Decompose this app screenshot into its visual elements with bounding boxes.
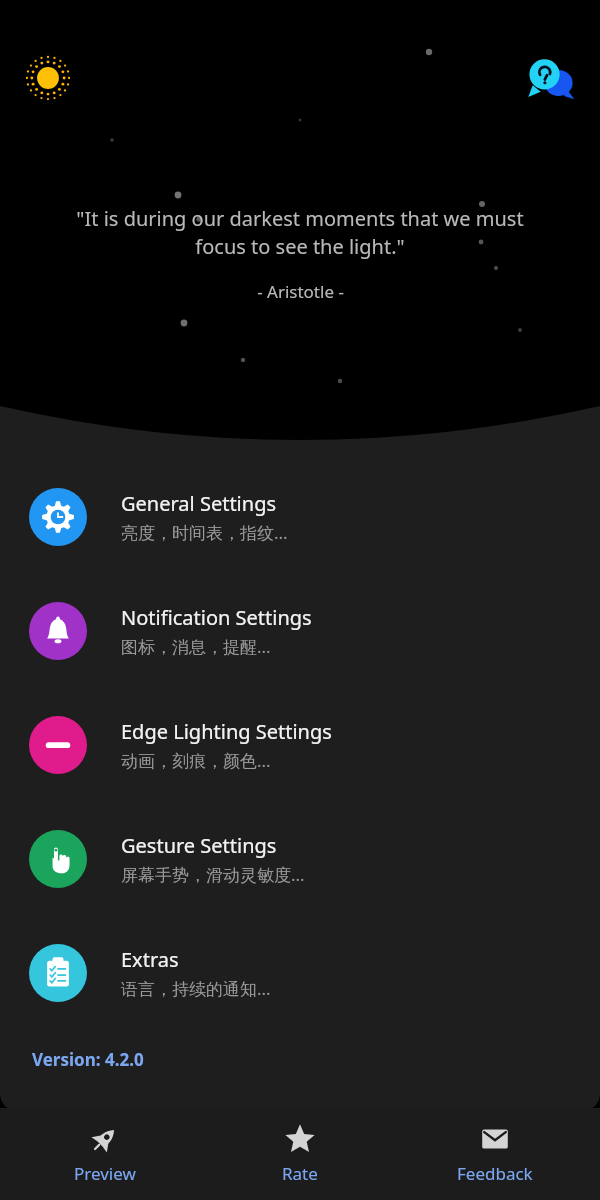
staticText: Notification Settings	[121, 604, 312, 631]
staticText: 动画，刻痕，颜色...	[121, 749, 271, 772]
staticText: Preview	[74, 1162, 136, 1185]
button[interactable]: Gesture Settings	[0, 802, 600, 916]
button[interactable]: Theme	[22, 52, 74, 104]
staticText: Extras	[121, 946, 179, 973]
staticText: General Settings	[121, 490, 277, 517]
button[interactable]: Rate	[210, 1108, 390, 1200]
staticText: Feedback	[457, 1162, 533, 1185]
button[interactable]: Preview	[15, 1108, 195, 1200]
staticText: 语言，持续的通知...	[121, 977, 271, 1000]
button[interactable]: General Settings	[0, 460, 600, 574]
button[interactable]: Edge Lighting Settings	[0, 688, 600, 802]
staticText: Gesture Settings	[121, 832, 277, 859]
button[interactable]: Version: 4.2.0	[32, 1048, 600, 1071]
staticText: 屏幕手势，滑动灵敏度...	[121, 863, 305, 886]
button[interactable]: Help	[524, 56, 578, 110]
staticText: "It is during our darkest moments that w…	[70, 205, 530, 260]
button[interactable]: Notification Settings	[0, 574, 600, 688]
button[interactable]: Feedback	[405, 1108, 585, 1200]
staticText: Rate	[282, 1162, 318, 1185]
staticText: - Aristotle -	[257, 280, 344, 303]
staticText: 图标，消息，提醒...	[121, 635, 271, 658]
staticText: Edge Lighting Settings	[121, 718, 332, 745]
staticText: Version: 4.2.0	[32, 1048, 144, 1071]
button[interactable]: Extras	[0, 916, 600, 1030]
staticText: 亮度，时间表，指纹...	[121, 521, 288, 544]
